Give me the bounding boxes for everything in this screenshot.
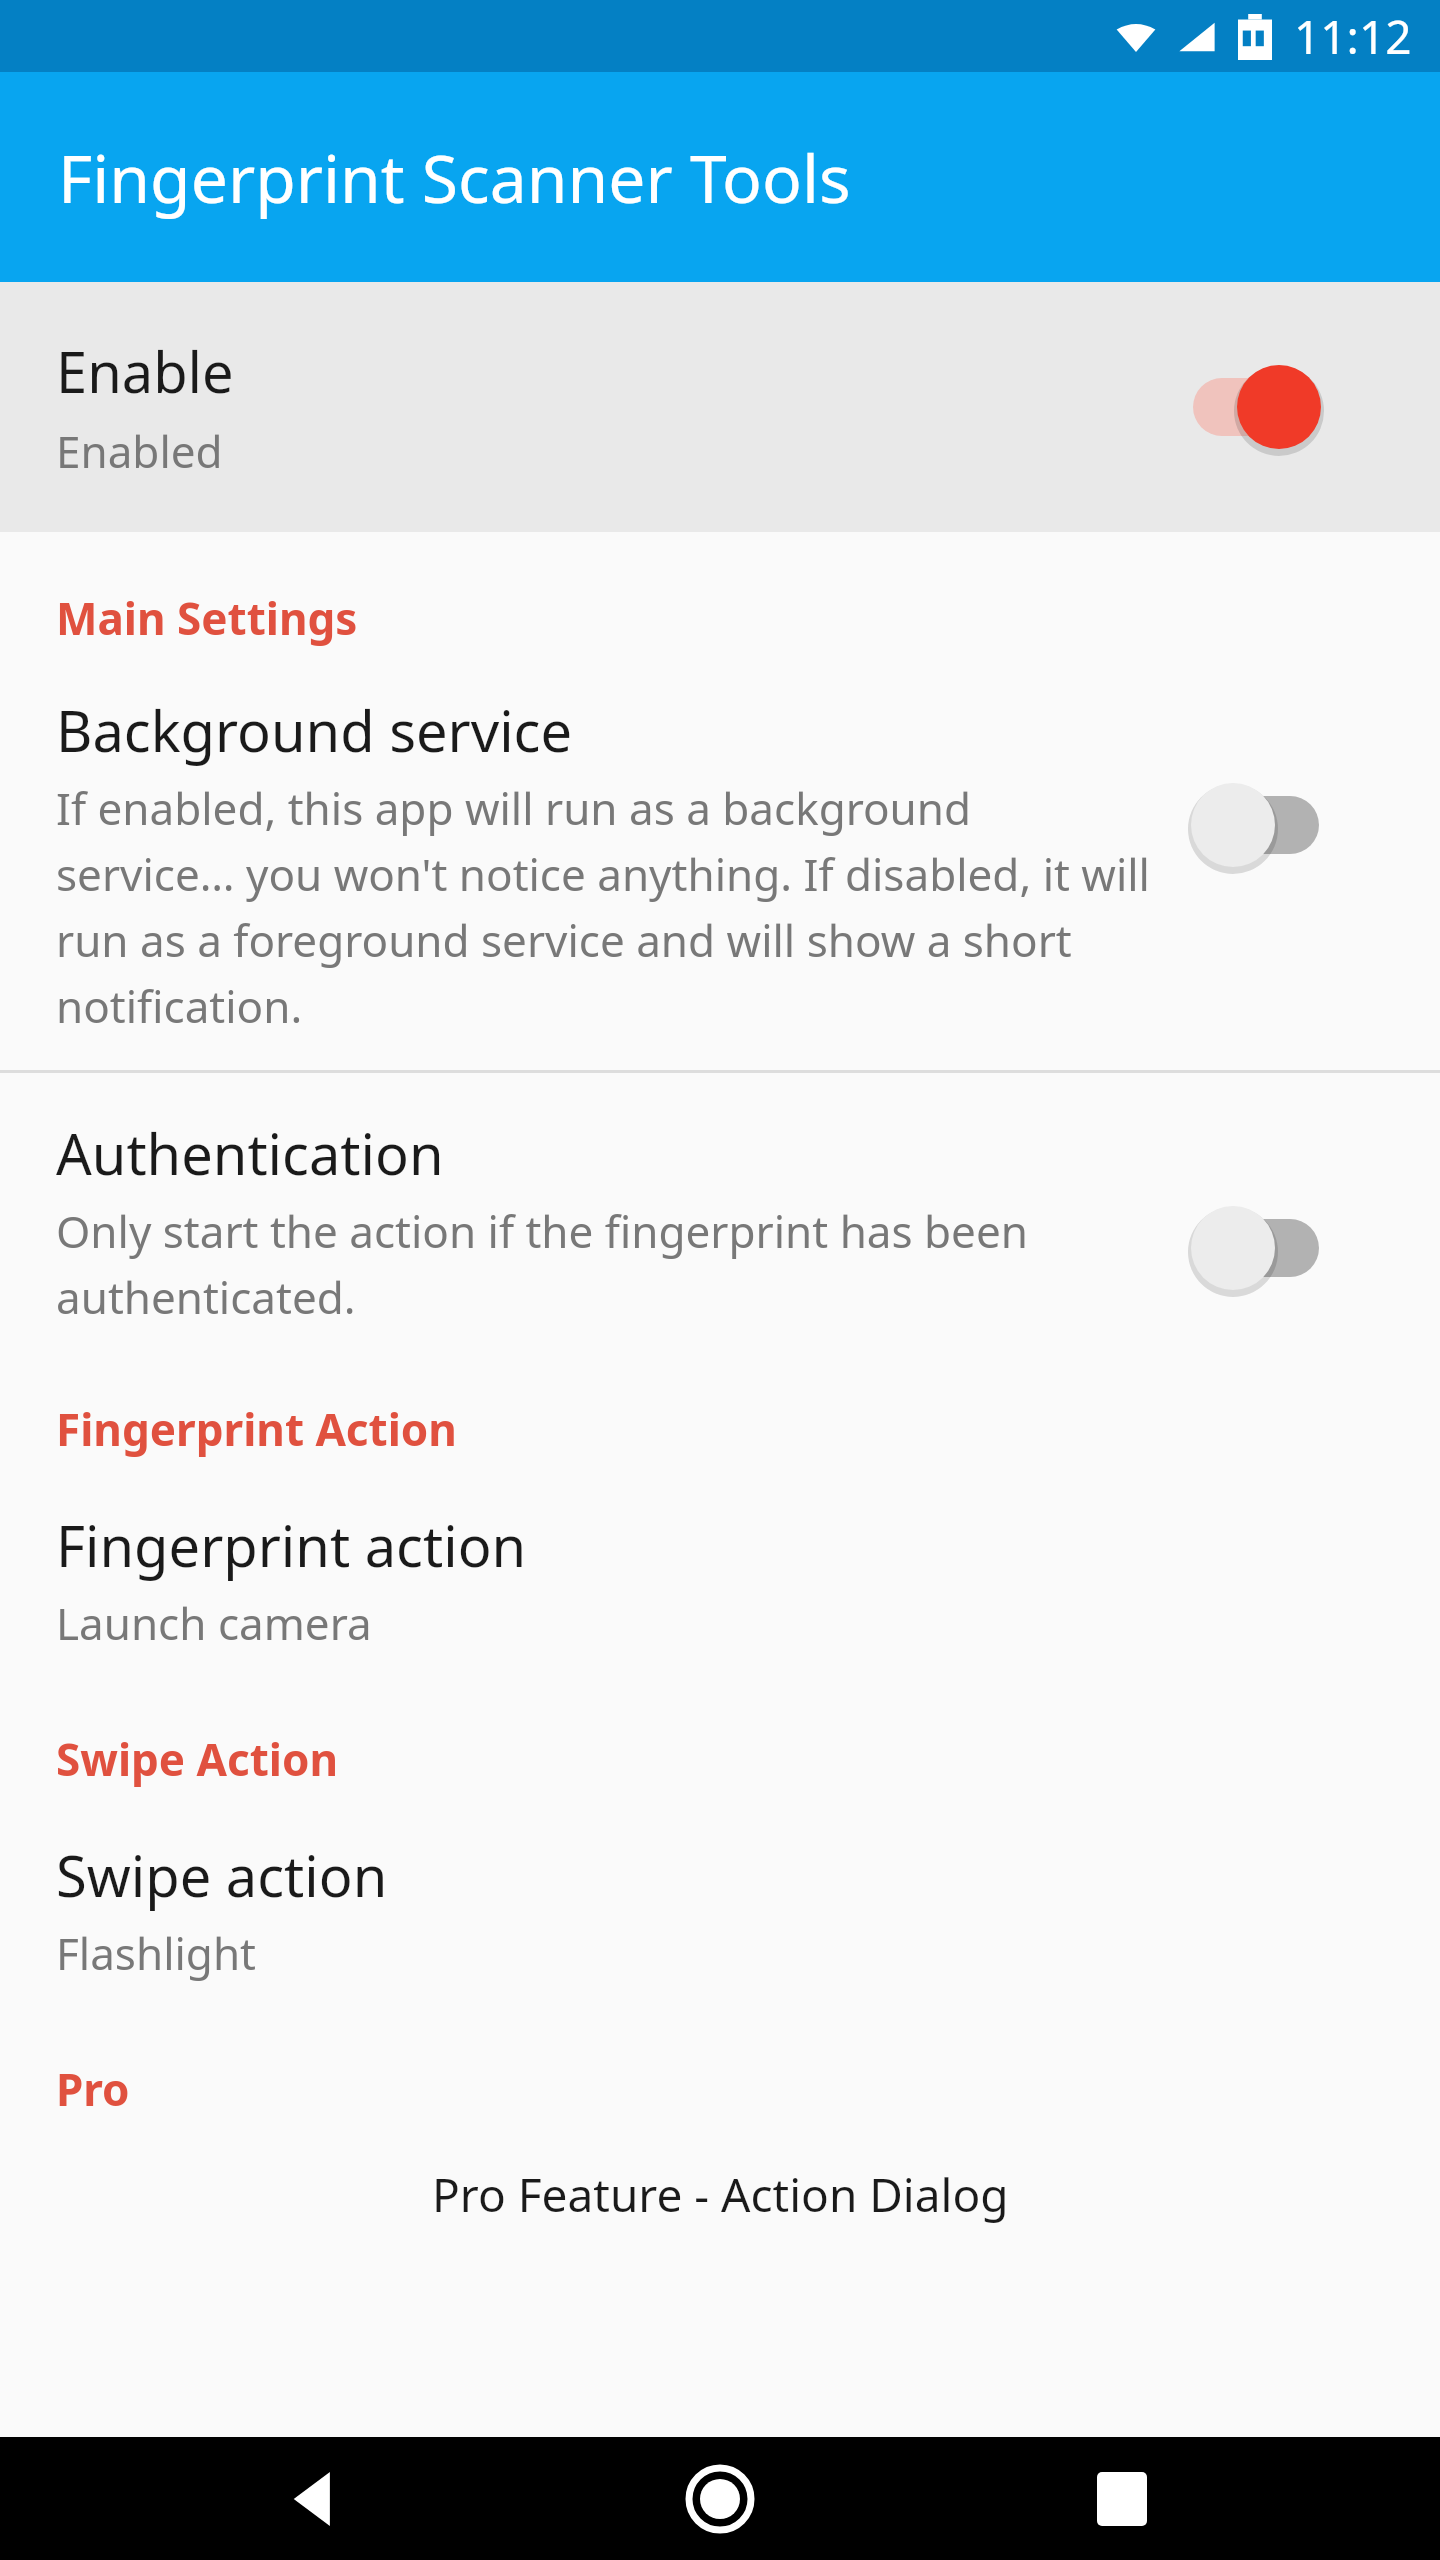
- staticText: Flashlight: [56, 1923, 256, 1983]
- staticText: Pro: [56, 2059, 130, 2119]
- staticText: Main Settings: [56, 588, 358, 648]
- staticText: Launch camera: [56, 1593, 372, 1653]
- button[interactable]: Recent apps: [1062, 2439, 1182, 2559]
- button[interactable]: Pro Feature - Action Dialog: [0, 2163, 1440, 2226]
- staticText: Fingerprint action: [56, 1507, 527, 1583]
- staticText: Fingerprint Scanner Tools: [58, 132, 851, 222]
- staticText: Only start the action if the fingerprint…: [56, 1201, 1155, 1327]
- button[interactable]: Background service: [0, 692, 1440, 1036]
- staticText: Enable: [56, 333, 234, 409]
- staticText: Swipe Action: [56, 1729, 339, 1789]
- button[interactable]: Enable: [0, 282, 1440, 532]
- button[interactable]: Toggle off: [1175, 770, 1345, 880]
- staticText: If enabled, this app will run as a backg…: [56, 778, 1155, 1036]
- button[interactable]: Authentication: [0, 1115, 1440, 1327]
- staticText: Pro Feature - Action Dialog: [432, 2163, 1009, 2226]
- staticText: 11:12: [1294, 5, 1412, 68]
- staticText: Background service: [56, 692, 573, 768]
- button[interactable]: Home: [660, 2439, 780, 2559]
- staticText: Swipe action: [56, 1837, 388, 1913]
- staticText: Authentication: [56, 1115, 444, 1191]
- button[interactable]: Back: [258, 2439, 378, 2559]
- button[interactable]: Swipe action: [0, 1837, 1440, 1983]
- button[interactable]: Toggle on: [1175, 352, 1345, 462]
- button[interactable]: Toggle off: [1175, 1193, 1345, 1303]
- button[interactable]: Fingerprint action: [0, 1507, 1440, 1653]
- staticText: Enabled: [56, 421, 223, 481]
- staticText: Fingerprint Action: [56, 1399, 457, 1459]
